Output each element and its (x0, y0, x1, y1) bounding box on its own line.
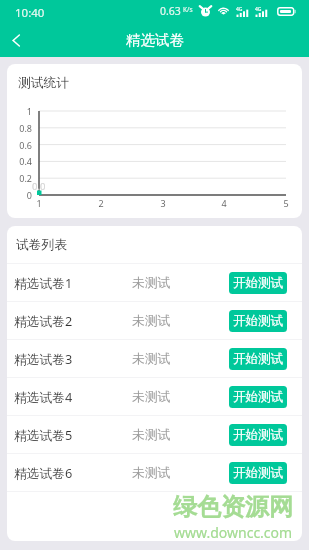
staticText: 开始测试 (233, 313, 283, 329)
staticText: 未测试 (132, 275, 171, 291)
button[interactable]: 精选试卷4 (7, 378, 302, 415)
staticText: 未测试 (132, 313, 171, 329)
staticText: 0.63 (160, 4, 181, 18)
staticText: 0 (7, 189, 32, 201)
staticText: K/s (183, 5, 193, 14)
staticText: 精选试卷 (126, 31, 184, 49)
staticText: www.downcc.com (174, 523, 293, 542)
staticText: 开始测试 (233, 351, 283, 367)
staticText: 绿色资源网 (173, 492, 293, 522)
staticText: 精选试卷1 (14, 274, 132, 291)
staticText: 开始测试 (233, 389, 283, 405)
staticText: 0.2 (7, 172, 32, 184)
staticText: 0.0 (32, 180, 46, 193)
staticText: 4G (236, 6, 243, 13)
staticText: 精选试卷3 (14, 350, 132, 367)
staticText: 开始测试 (233, 465, 283, 481)
staticText: 5 (280, 197, 292, 209)
staticText: 0.4 (7, 155, 32, 167)
button[interactable]: 精选试卷1 (7, 264, 302, 301)
button[interactable]: 开始测试 (229, 272, 287, 294)
staticText: 1 (33, 197, 45, 209)
staticText: 试卷列表 (16, 237, 67, 253)
button[interactable]: 精选试卷5 (7, 416, 302, 453)
staticText: 4 (218, 197, 230, 209)
button[interactable]: 精选试卷2 (7, 302, 302, 339)
staticText: 开始测试 (233, 275, 283, 291)
staticText: 未测试 (132, 465, 171, 481)
button[interactable]: 开始测试 (229, 348, 287, 370)
staticText: 10:40 (15, 5, 45, 21)
button[interactable]: 精选试卷3 (7, 340, 302, 377)
button[interactable]: 开始测试 (229, 462, 287, 484)
staticText: 未测试 (132, 427, 171, 443)
staticText: 开始测试 (233, 427, 283, 443)
staticText: 精选试卷5 (14, 426, 132, 443)
staticText: 0.8 (7, 122, 32, 134)
staticText: 测试统计 (18, 75, 69, 91)
staticText: 2 (95, 197, 107, 209)
button[interactable]: Back (0, 23, 34, 57)
staticText: 精选试卷4 (14, 388, 132, 405)
button[interactable]: 精选试卷6 (7, 454, 302, 491)
staticText: 未测试 (132, 389, 171, 405)
staticText: 精选试卷2 (14, 312, 132, 329)
staticText: 精选试卷6 (14, 464, 132, 481)
button[interactable]: 开始测试 (229, 386, 287, 408)
button[interactable]: 开始测试 (229, 310, 287, 332)
staticText: 3 (157, 197, 169, 209)
button[interactable]: 开始测试 (229, 424, 287, 446)
staticText: 0.6 (7, 139, 32, 151)
staticText: 未测试 (132, 351, 171, 367)
staticText: 4G (255, 6, 262, 13)
staticText: 1 (7, 105, 32, 117)
